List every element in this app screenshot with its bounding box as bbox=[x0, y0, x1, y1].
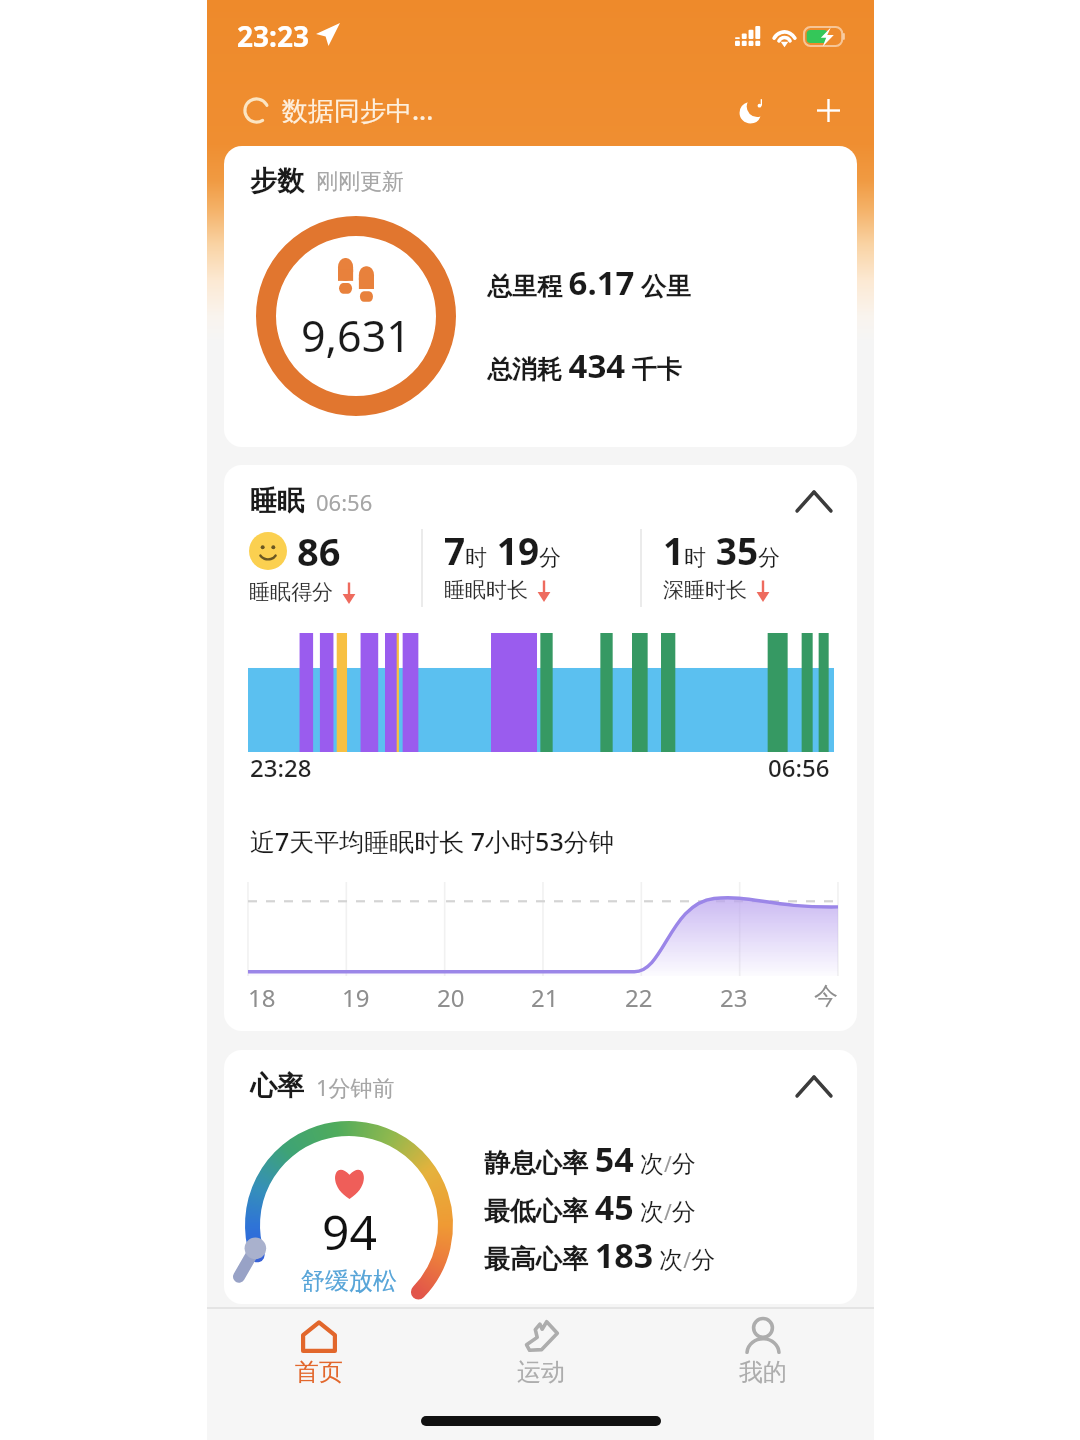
staticText: 今 bbox=[814, 981, 838, 1011]
staticText: 舒缓放松 bbox=[301, 1266, 397, 1296]
button[interactable]: Add bbox=[802, 84, 854, 136]
staticText: 近7天平均睡眠时长 7小时53分钟 bbox=[250, 824, 614, 858]
staticText: 23:28 bbox=[250, 751, 312, 784]
button[interactable]: 运动 bbox=[430, 1309, 652, 1393]
staticText: 睡眠时长 bbox=[444, 577, 528, 603]
staticText: 最高心率 183 次/分 bbox=[484, 1232, 716, 1278]
staticText: 86 bbox=[297, 525, 341, 577]
staticText: 首页 bbox=[295, 1357, 343, 1387]
button[interactable]: Sleep mode bbox=[726, 84, 778, 136]
staticText: 总里程 6.17 公里 bbox=[487, 260, 691, 305]
staticText: 数据同步中... bbox=[282, 92, 434, 128]
button[interactable]: Collapse bbox=[791, 478, 837, 524]
staticText: 22 bbox=[625, 981, 653, 1014]
staticText: 静息心率 54 次/分 bbox=[484, 1136, 696, 1182]
staticText: 步数 bbox=[250, 164, 304, 198]
staticText: 9,631 bbox=[301, 306, 411, 365]
button[interactable]: 心率 bbox=[224, 1050, 857, 1304]
button[interactable]: 睡眠 bbox=[224, 465, 857, 1031]
staticText: 睡眠得分 bbox=[249, 579, 333, 605]
staticText: 06:56 bbox=[316, 487, 373, 517]
button[interactable]: 步数 bbox=[224, 146, 857, 447]
staticText: 1分钟前 bbox=[316, 1072, 395, 1102]
staticText: 23 bbox=[720, 981, 748, 1014]
button[interactable]: Collapse bbox=[791, 1063, 837, 1109]
button[interactable]: 我的 bbox=[652, 1309, 874, 1393]
staticText: 06:56 bbox=[768, 751, 830, 784]
staticText: 23:23 bbox=[237, 17, 309, 55]
staticText: 睡眠 bbox=[250, 484, 304, 518]
staticText: 18 bbox=[248, 981, 276, 1014]
staticText: 运动 bbox=[517, 1357, 565, 1387]
staticText: 94 bbox=[322, 1199, 377, 1264]
button[interactable]: 首页 bbox=[207, 1309, 430, 1393]
staticText: 我的 bbox=[739, 1357, 787, 1387]
staticText: 21 bbox=[531, 981, 559, 1014]
staticText: 19 bbox=[342, 981, 370, 1014]
staticText: 刚刚更新 bbox=[316, 168, 404, 196]
staticText: 1时 35分 bbox=[663, 525, 781, 575]
staticText: 最低心率 45 次/分 bbox=[484, 1184, 696, 1230]
staticText: 总消耗 434 千卡 bbox=[487, 343, 682, 388]
staticText: 深睡时长 bbox=[663, 577, 747, 603]
staticText: 20 bbox=[437, 981, 465, 1014]
staticText: 7时 19分 bbox=[444, 525, 562, 575]
staticText: 心率 bbox=[250, 1069, 304, 1103]
